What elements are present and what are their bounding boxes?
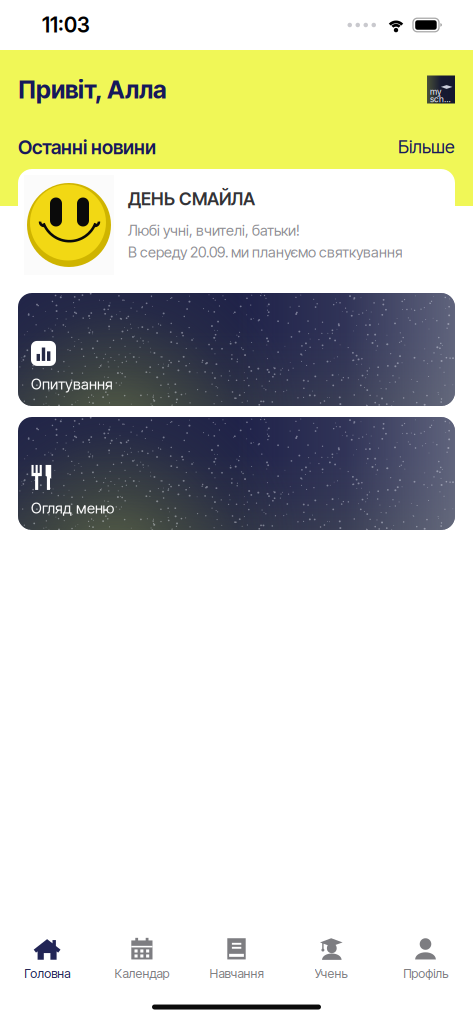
button[interactable]: Профіль — [378, 928, 473, 990]
staticText: Любі учні, вчителі, батьки! — [128, 221, 300, 239]
staticText: Профіль — [403, 966, 448, 981]
staticText: 11:03 — [42, 12, 90, 38]
staticText: Календар — [114, 966, 169, 981]
button[interactable]: My School — [427, 75, 455, 103]
staticText: Опитування — [31, 375, 113, 393]
button[interactable]: Огляд меню — [18, 417, 455, 530]
button[interactable]: Опитування — [18, 293, 455, 406]
staticText: Головна — [24, 966, 70, 981]
button[interactable]: ДЕНЬ СМАЙЛА — [18, 169, 455, 282]
staticText: Учень — [315, 966, 348, 981]
staticText: Привіт, Алла — [18, 75, 167, 104]
button[interactable]: Учень — [284, 928, 378, 990]
staticText: school — [430, 94, 454, 104]
staticText: Огляд меню — [31, 499, 114, 517]
button[interactable]: Більше — [398, 136, 455, 159]
button[interactable]: Головна — [0, 928, 95, 990]
button[interactable]: Календар — [95, 928, 189, 990]
button[interactable]: Навчання — [189, 928, 284, 990]
staticText: my — [430, 87, 441, 97]
staticText: В середу 20.09. ми плануємо святкування — [128, 243, 403, 261]
staticText: ДЕНЬ СМАЙЛА — [128, 188, 255, 209]
staticText: Навчання — [209, 966, 263, 981]
staticText: Останні новини — [18, 136, 156, 159]
staticText: Більше — [398, 136, 455, 157]
